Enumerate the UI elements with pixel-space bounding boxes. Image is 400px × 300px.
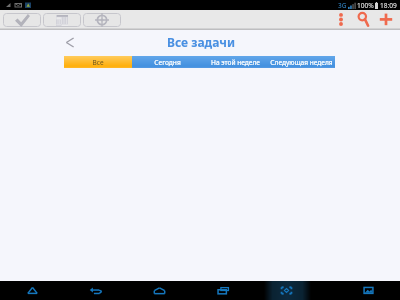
staticText: На этой неделе [211,58,260,67]
staticText: Сегодня [154,58,181,67]
button[interactable]: Recents [191,281,255,300]
button[interactable]: Location [83,13,121,27]
button[interactable]: Back [63,35,77,49]
button[interactable]: Multi window [336,281,400,300]
button[interactable]: На этой неделе [202,56,268,68]
staticText: 18:09 [380,1,397,10]
button[interactable]: Следующая неделя [268,56,335,68]
staticText: 100% [357,1,374,10]
button[interactable]: Tasks [3,13,41,27]
button[interactable]: Add [376,10,398,30]
button[interactable]: Capture screen [254,281,318,300]
button[interactable]: Home [127,281,191,300]
staticText: 3G [338,1,347,10]
staticText: Все [92,58,104,67]
button[interactable]: Back [64,281,128,300]
staticText: Следующая неделя [270,58,333,67]
button[interactable]: Search [353,10,373,30]
button[interactable]: Все [64,56,132,68]
button[interactable]: Сегодня [132,56,202,68]
button[interactable]: Expand [0,281,64,300]
button[interactable]: More options [333,10,349,30]
button[interactable]: Notes [43,13,81,27]
staticText: Все задачи [167,34,236,50]
